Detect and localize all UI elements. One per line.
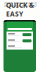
staticText: ORDER YOUR FAVOURITE: [3, 1, 36, 5]
staticText: GERMAN MEALS DELIVERED: [3, 4, 36, 7]
staticText: QUICK & EASY: [6, 1, 34, 18]
